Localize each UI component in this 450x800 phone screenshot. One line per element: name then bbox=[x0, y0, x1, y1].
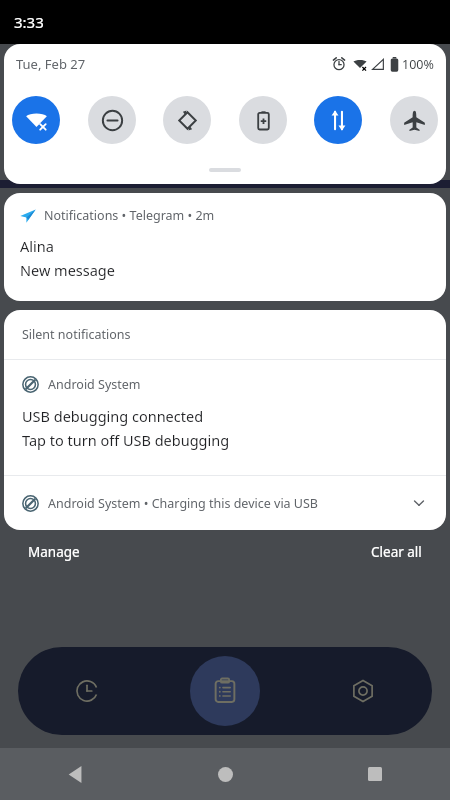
button[interactable]: Android System bbox=[4, 360, 446, 475]
button[interactable]: Back bbox=[0, 748, 150, 800]
staticText: 3:33 bbox=[14, 12, 44, 32]
staticText: Alina bbox=[20, 236, 54, 256]
button[interactable]: Wi-Fi bbox=[12, 96, 60, 144]
button[interactable]: Home bbox=[150, 748, 300, 800]
staticText: Tap to turn off USB debugging bbox=[22, 430, 230, 450]
button[interactable]: Recent apps bbox=[300, 748, 450, 800]
button[interactable]: Do not disturb bbox=[88, 96, 136, 144]
staticText: 100% bbox=[402, 56, 434, 73]
button[interactable]: Camera bbox=[335, 663, 391, 719]
button[interactable]: Notifications • Telegram • 2m bbox=[4, 193, 446, 301]
button[interactable]: Silent notifications bbox=[4, 310, 446, 359]
staticText: Notifications • Telegram • 2m bbox=[44, 207, 215, 224]
staticText: USB debugging connected bbox=[22, 406, 204, 426]
button[interactable]: Clear all bbox=[347, 537, 446, 567]
button[interactable]: Manage bbox=[4, 537, 104, 567]
staticText: Clear all bbox=[371, 543, 422, 561]
other: Expand bbox=[408, 492, 430, 514]
button[interactable]: Airplane mode bbox=[390, 96, 438, 144]
button[interactable]: Android System • Charging this device vi… bbox=[4, 476, 446, 530]
button[interactable]: Battery saver bbox=[239, 96, 287, 144]
staticText: Silent notifications bbox=[22, 326, 131, 343]
button[interactable]: Tasks bbox=[190, 656, 260, 726]
staticText: Android System bbox=[48, 376, 141, 393]
staticText: Android System • Charging this device vi… bbox=[48, 495, 318, 512]
button[interactable]: Clock bbox=[59, 663, 115, 719]
staticText: Manage bbox=[28, 543, 80, 561]
staticText: Tue, Feb 27 bbox=[16, 55, 86, 73]
button[interactable]: Auto rotate bbox=[163, 96, 211, 144]
staticText: New message bbox=[20, 260, 115, 280]
button[interactable]: Mobile data bbox=[314, 96, 362, 144]
